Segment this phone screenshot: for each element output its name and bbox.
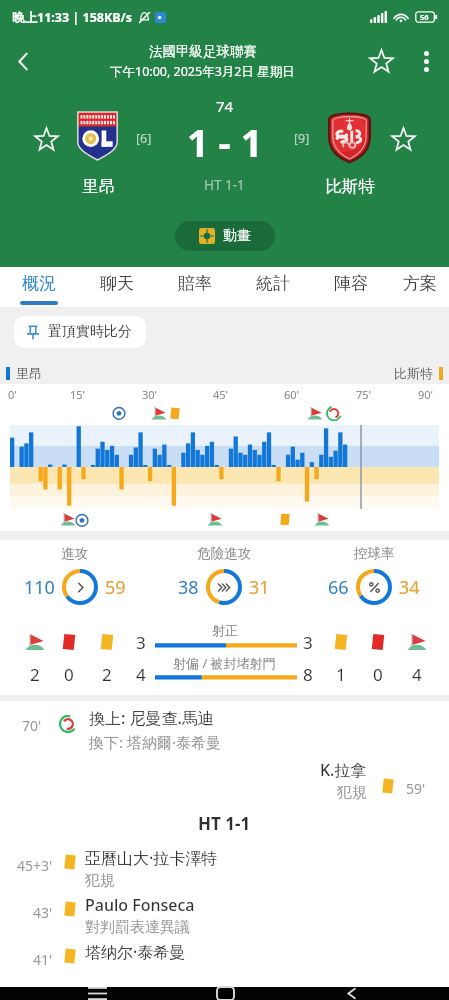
staticText: 動畫 (223, 227, 251, 245)
button[interactable]: 45+3' (0, 845, 449, 892)
staticText: 2 (30, 663, 40, 686)
staticText: 里昂 (16, 365, 42, 381)
button[interactable]: K.拉拿 (0, 759, 449, 802)
staticText: 統計 (256, 273, 290, 294)
staticText: 法國甲級足球聯賽 (149, 43, 257, 60)
button[interactable]: 43' (0, 892, 449, 939)
button[interactable]: 統計 (234, 267, 312, 307)
staticText: 比斯特 (318, 176, 382, 197)
staticText: 里昂 (77, 176, 121, 197)
staticText: 31 (249, 575, 270, 600)
button[interactable]: Back (0, 34, 46, 88)
button[interactable]: Home (194, 987, 256, 1000)
staticText: 4 (412, 663, 422, 686)
button[interactable]: 陣容 (312, 267, 390, 307)
staticText: 1 (336, 663, 346, 686)
staticText: 0 (64, 663, 74, 686)
staticText: 亞曆山大·拉卡澤特 (85, 847, 218, 869)
button[interactable]: 賠率 (156, 267, 234, 307)
button[interactable]: Favourite (359, 34, 403, 88)
staticText: 犯規 (337, 783, 367, 802)
staticText: K.拉拿 (320, 759, 367, 781)
staticText: [9] (294, 130, 310, 147)
staticText: 3 (136, 631, 146, 654)
staticText: 方案 (403, 273, 437, 294)
staticText: 聊天 (100, 273, 134, 294)
staticText: 2 (102, 663, 112, 686)
staticText: 59' (406, 779, 426, 798)
button[interactable]: 控球率 (299, 540, 449, 622)
staticText: 塔纳尔·泰希曼 (85, 941, 186, 963)
button[interactable]: Recent apps (66, 987, 128, 1000)
button[interactable]: Favourite Brest (390, 126, 416, 152)
staticText: 34 (399, 575, 420, 600)
staticText: 換上: 尼曼查.馬迪 (89, 707, 214, 729)
button[interactable]: Back (321, 987, 383, 1000)
staticText: 74 (216, 96, 234, 116)
staticText: 15' (70, 387, 86, 402)
staticText: [6] (136, 130, 152, 147)
staticText: 置頂實時比分 (48, 323, 132, 341)
staticText: 38 (178, 575, 199, 600)
button[interactable]: 70' (0, 707, 449, 754)
staticText: 110 (24, 575, 55, 600)
staticText: 對判罰表達異議 (85, 918, 190, 937)
staticText: 1 - 1 (187, 116, 263, 168)
staticText: 射偏 / 被封堵射門 (173, 654, 276, 672)
staticText: 晚上11:33 | 158KB/s (12, 9, 133, 26)
staticText: 危險進攻 (197, 545, 251, 562)
staticText: 射正 (212, 622, 238, 638)
button[interactable]: 概況 (0, 267, 78, 307)
staticText: 3 (303, 631, 313, 654)
staticText: 45+3' (17, 856, 53, 875)
staticText: 30' (142, 387, 158, 402)
staticText: 43' (33, 903, 53, 922)
button[interactable]: 方案 (390, 267, 449, 307)
staticText: 0 (373, 663, 383, 686)
staticText: 59 (105, 575, 126, 600)
button[interactable]: 危險進攻 (149, 540, 299, 622)
button[interactable]: 動畫 (175, 221, 275, 251)
staticText: 0' (8, 387, 17, 402)
staticText: 70' (22, 716, 42, 735)
staticText: 比斯特 (394, 365, 433, 381)
button[interactable]: 進攻 (0, 540, 149, 622)
button[interactable]: More options (403, 34, 449, 88)
staticText: 66 (328, 575, 349, 600)
staticText: 41' (33, 950, 53, 969)
staticText: 75' (356, 387, 372, 402)
button[interactable]: Favourite Lyon (33, 126, 59, 152)
staticText: HT 1-1 (198, 812, 251, 835)
staticText: Paulo Fonseca (85, 894, 195, 916)
staticText: 陣容 (334, 273, 368, 294)
staticText: 賠率 (178, 273, 212, 294)
staticText: 換下: 塔納爾·泰希曼 (89, 732, 221, 752)
staticText: 進攻 (61, 545, 88, 562)
staticText: 概況 (22, 273, 56, 294)
staticText: 56 (420, 12, 429, 22)
staticText: 60' (284, 387, 300, 402)
staticText: 下午10:00, 2025年3月2日 星期日 (110, 63, 295, 80)
button[interactable]: 置頂實時比分 (14, 316, 146, 348)
staticText: 45' (213, 387, 229, 402)
button[interactable]: 41' (0, 939, 449, 987)
staticText: HT 1-1 (204, 176, 245, 194)
staticText: 8 (303, 663, 313, 686)
staticText: 控球率 (354, 545, 395, 562)
staticText: 90' (418, 387, 434, 402)
staticText: 4 (136, 663, 146, 686)
staticText: 犯規 (85, 871, 115, 890)
button[interactable]: 聊天 (78, 267, 156, 307)
